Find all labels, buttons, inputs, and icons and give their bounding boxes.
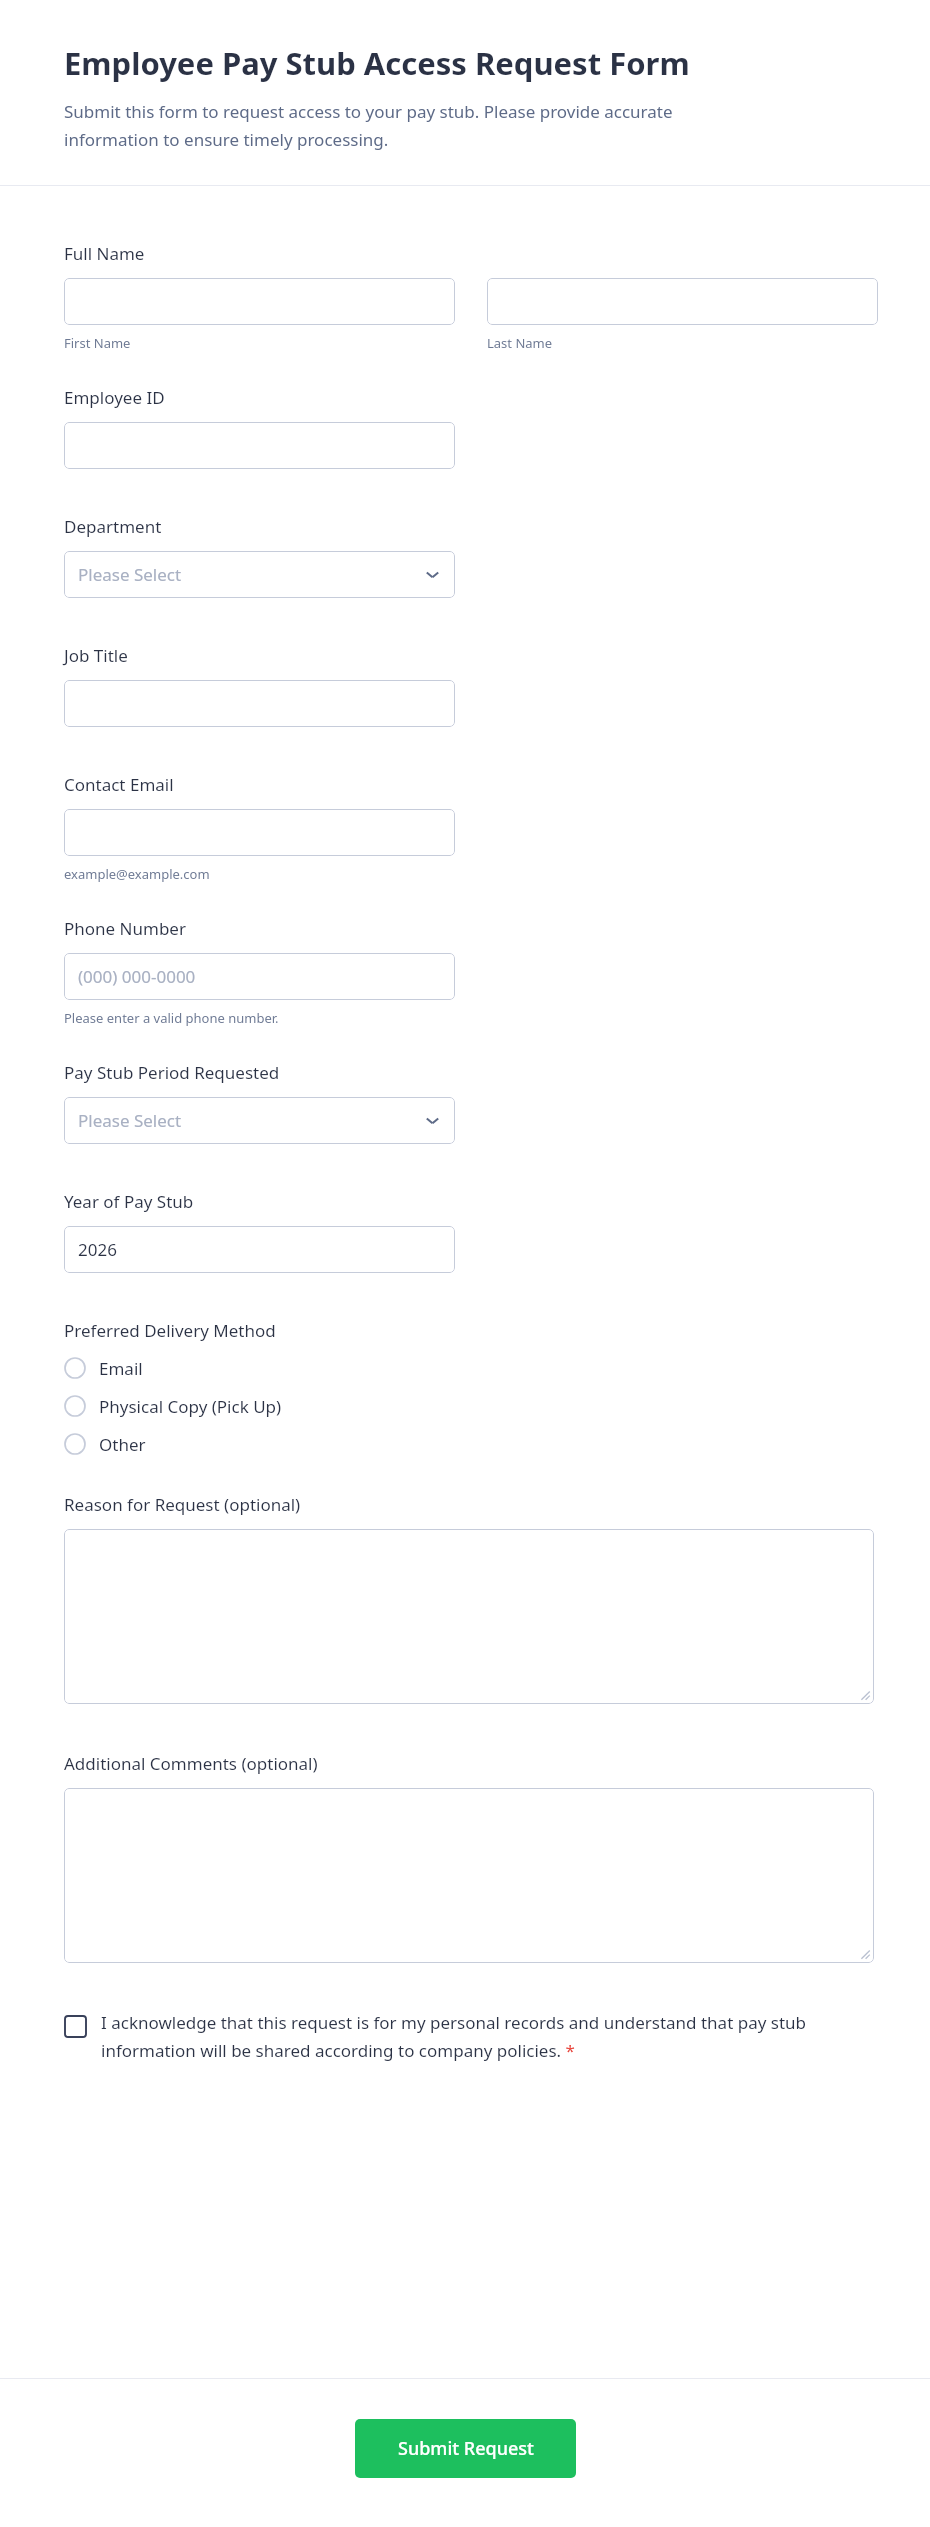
staticText: Additional Comments (optional) bbox=[64, 1752, 318, 1775]
button[interactable]: I acknowledge that this request is for m… bbox=[64, 2011, 880, 2062]
button[interactable]: Other bbox=[64, 1425, 146, 1463]
staticText: Email bbox=[99, 1357, 143, 1380]
button[interactable] bbox=[64, 1788, 874, 1963]
button[interactable] bbox=[64, 422, 455, 469]
staticText: Employee ID bbox=[64, 386, 165, 409]
button[interactable]: 2026 bbox=[64, 1226, 455, 1273]
other: Open dropdown bbox=[425, 1113, 440, 1128]
staticText: Employee Pay Stub Access Request Form bbox=[64, 42, 690, 84]
button[interactable]: Please Select bbox=[64, 551, 455, 598]
staticText: Contact Email bbox=[64, 773, 174, 796]
staticText: Preferred Delivery Method bbox=[64, 1319, 276, 1342]
staticText: Last Name bbox=[487, 334, 553, 352]
button[interactable]: Please Select bbox=[64, 1097, 455, 1144]
staticText: Full Name bbox=[64, 242, 145, 265]
staticText: (000) 000-0000 bbox=[78, 965, 196, 988]
staticText: I acknowledge that this request is for m… bbox=[101, 2011, 880, 2062]
button[interactable] bbox=[64, 680, 455, 727]
staticText: example@example.com bbox=[64, 865, 210, 883]
staticText: Job Title bbox=[64, 644, 128, 667]
staticText: First Name bbox=[64, 334, 131, 352]
staticText: 2026 bbox=[78, 1238, 117, 1261]
staticText: Phone Number bbox=[64, 917, 186, 940]
staticText: Please enter a valid phone number. bbox=[64, 1009, 279, 1027]
staticText: Other bbox=[99, 1433, 146, 1456]
staticText: Physical Copy (Pick Up) bbox=[99, 1395, 282, 1418]
other: Open dropdown bbox=[425, 567, 440, 582]
button[interactable]: Physical Copy (Pick Up) bbox=[64, 1387, 282, 1425]
staticText: Submit Request bbox=[398, 2436, 534, 2461]
button[interactable]: Email bbox=[64, 1349, 143, 1387]
button[interactable]: (000) 000-0000 bbox=[64, 953, 455, 1000]
staticText: Please Select bbox=[78, 563, 182, 586]
button[interactable] bbox=[64, 1529, 874, 1704]
button[interactable] bbox=[487, 278, 878, 325]
staticText: Please Select bbox=[78, 1109, 182, 1132]
button[interactable] bbox=[64, 278, 455, 325]
staticText: Department bbox=[64, 515, 162, 538]
button[interactable]: Submit Request bbox=[355, 2419, 576, 2478]
staticText: Submit this form to request access to yo… bbox=[64, 100, 673, 151]
button[interactable] bbox=[64, 809, 455, 856]
staticText: Pay Stub Period Requested bbox=[64, 1061, 280, 1084]
staticText: Year of Pay Stub bbox=[64, 1190, 194, 1213]
staticText: Reason for Request (optional) bbox=[64, 1493, 301, 1516]
